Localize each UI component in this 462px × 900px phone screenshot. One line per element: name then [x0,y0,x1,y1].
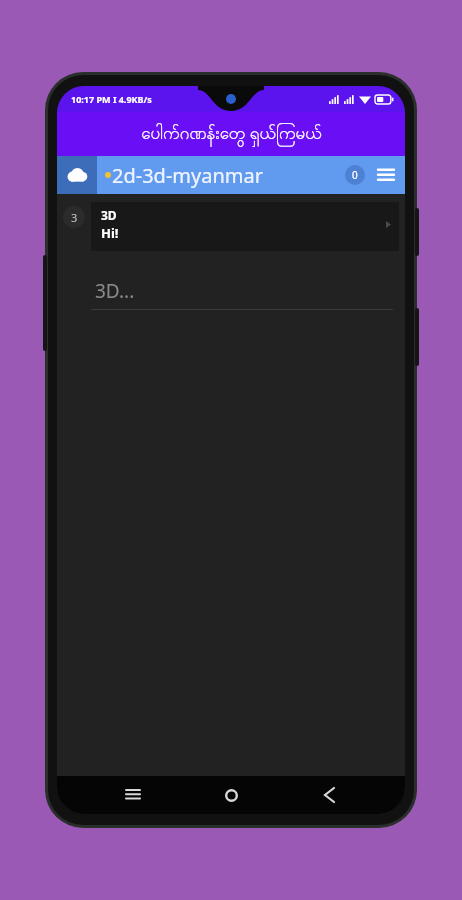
staticText: Hi! [101,224,119,242]
button[interactable]: 3D [91,202,399,251]
staticText: 2d-3d-myanmar [112,162,345,189]
button[interactable]: 3 [63,206,85,228]
button[interactable]: Cloud [57,156,97,194]
button[interactable]: Home [209,776,253,814]
button[interactable]: 3D... [91,273,393,310]
button[interactable]: Recents [111,776,155,814]
staticText: 3 [71,210,78,225]
staticText: 10:17 PM I 4.9KB/s [71,93,152,105]
button[interactable]: Menu [375,164,397,186]
staticText: 3D... [95,278,135,304]
button[interactable]: 2d-3d-myanmar [97,156,405,194]
staticText: 3D [101,207,117,223]
staticText: 0 [352,168,358,182]
button[interactable]: Back [307,776,351,814]
button[interactable]: 0 [345,165,365,185]
staticText: ပေါက်ဂဏန်းတွေ ရှယ်ကြမယ် [141,121,322,147]
